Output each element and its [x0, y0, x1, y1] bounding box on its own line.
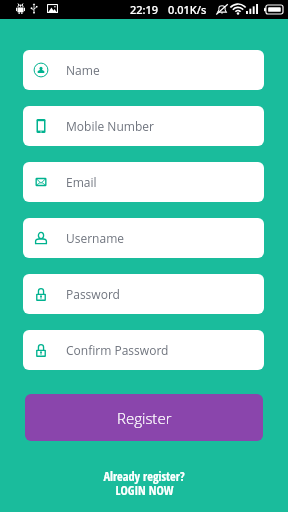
button[interactable]: Mobile Number: [23, 106, 264, 146]
staticText: Name: [66, 62, 100, 78]
staticText: Confirm Password: [66, 342, 169, 358]
button[interactable]: Password: [23, 274, 264, 314]
other: Android debug: [16, 3, 25, 14]
button[interactable]: Confirm Password: [23, 330, 264, 370]
staticText: Mobile Number: [66, 118, 154, 134]
other: Wi-Fi: [231, 4, 245, 14]
staticText: Email: [66, 174, 97, 190]
button[interactable]: Register: [25, 394, 263, 441]
staticText: Already register?: [103, 468, 185, 485]
button[interactable]: Already register? LOGIN NOW: [0, 468, 288, 500]
button[interactable]: Username: [23, 218, 264, 258]
button[interactable]: Email: [23, 162, 264, 202]
staticText: 22:19: [130, 2, 159, 17]
other: Battery: [264, 5, 283, 14]
staticText: 0.01K/s: [168, 2, 207, 17]
staticText: Password: [66, 286, 120, 302]
other: Mobile signal: [246, 4, 258, 14]
other: Silent mode: [216, 3, 228, 15]
other: USB connected: [30, 3, 38, 14]
staticText: LOGIN NOW: [115, 482, 174, 499]
staticText: Register: [117, 408, 172, 428]
other: Screenshot: [47, 4, 58, 13]
button[interactable]: Name: [23, 50, 264, 90]
staticText: Username: [66, 230, 125, 246]
